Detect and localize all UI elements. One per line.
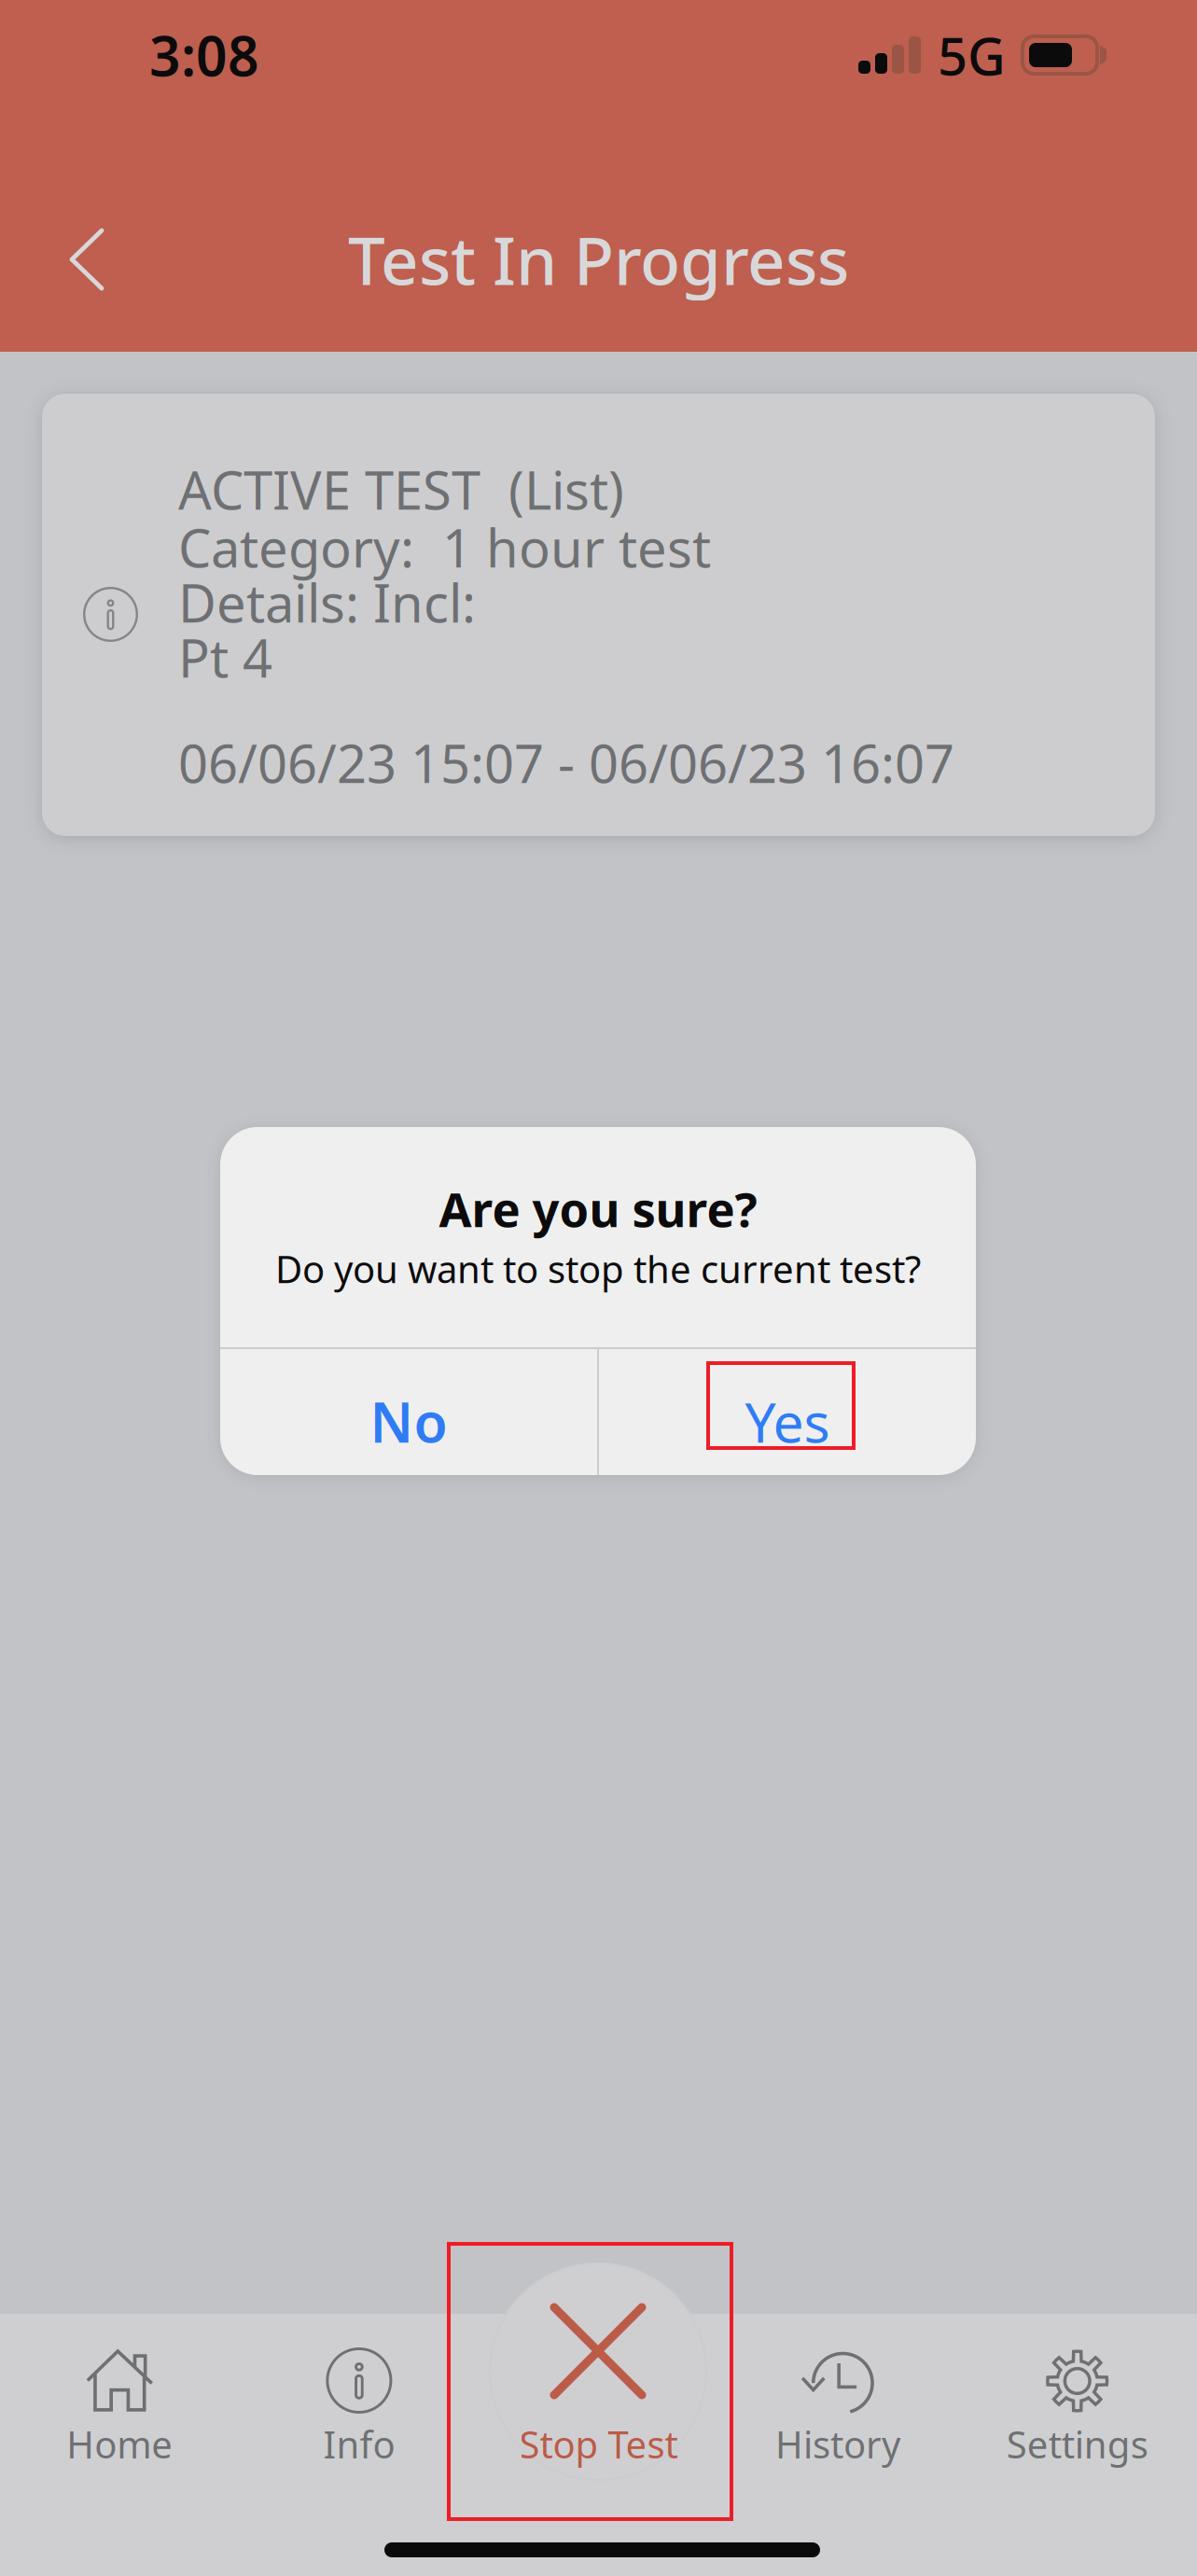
staticText: Info: [323, 2419, 395, 2469]
staticText: Pt 4: [178, 623, 272, 692]
staticText: Yes: [745, 1385, 830, 1458]
staticText: Do you want to stop the current test?: [275, 1244, 921, 1294]
staticText: ACTIVE TEST (List): [178, 455, 624, 524]
staticText: 5G: [938, 20, 1006, 90]
staticText: Test In Progress: [348, 216, 849, 303]
button[interactable]: Home: [0, 2300, 239, 2505]
staticText: 06/06/23 15:07 - 06/06/23 16:07: [178, 728, 954, 797]
button[interactable]: Stop Test: [479, 2300, 718, 2505]
staticText: History: [775, 2419, 900, 2469]
staticText: No: [370, 1385, 447, 1458]
button[interactable]: No: [220, 1349, 597, 1475]
staticText: Details: Incl:: [178, 568, 476, 637]
staticText: Category: 1 hour test: [178, 512, 711, 582]
staticText: 3:08: [149, 19, 259, 91]
button[interactable]: Back: [0, 217, 104, 302]
button[interactable]: Settings: [958, 2300, 1197, 2505]
button[interactable]: Info: [239, 2300, 479, 2505]
staticText: Stop Test: [519, 2419, 678, 2469]
button[interactable]: Yes: [599, 1349, 976, 1475]
staticText: Settings: [1006, 2419, 1148, 2469]
staticText: Home: [67, 2419, 173, 2469]
button[interactable]: History: [718, 2300, 958, 2505]
staticText: Are you sure?: [439, 1177, 757, 1240]
